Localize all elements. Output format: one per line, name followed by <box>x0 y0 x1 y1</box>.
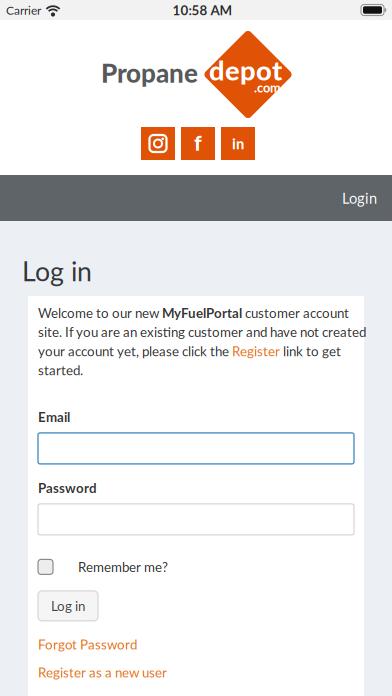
staticText: in <box>232 135 244 152</box>
staticText: Carrier <box>6 3 41 17</box>
staticText: Log in <box>51 598 85 614</box>
staticText: Propane <box>101 57 198 88</box>
button[interactable]: Instagram <box>141 127 175 160</box>
staticText: Login <box>342 189 377 207</box>
staticText: Remember me? <box>78 559 168 575</box>
staticText: f <box>194 130 202 155</box>
staticText: Forgot Password <box>38 636 137 652</box>
staticText: Email <box>38 409 70 425</box>
button[interactable]: Register as a new user <box>38 665 354 680</box>
button[interactable]: Remember me? <box>38 559 354 575</box>
staticText: 10:58 AM <box>172 2 232 18</box>
staticText: .com <box>254 80 281 95</box>
staticText: Log in <box>22 255 92 287</box>
button[interactable]: Forgot Password <box>38 637 354 652</box>
button[interactable]: Facebook <box>181 127 215 160</box>
button[interactable]: Login <box>327 175 392 221</box>
button[interactable]: LinkedIn <box>221 127 255 160</box>
staticText: Password <box>38 480 97 496</box>
staticText: Welcome to our new MyFuelPortal customer… <box>38 305 366 378</box>
button[interactable]: Log in <box>38 591 98 621</box>
staticText: depot <box>209 53 282 86</box>
staticText: Register as a new user <box>38 664 167 680</box>
